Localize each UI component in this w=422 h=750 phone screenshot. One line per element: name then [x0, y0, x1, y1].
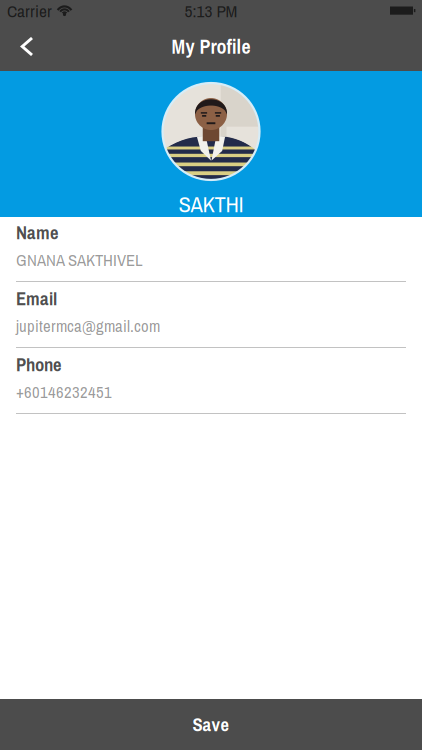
staticText: Email — [16, 286, 57, 311]
staticText: jupitermca@gmail.com — [16, 315, 160, 337]
staticText: SAKTHI — [178, 189, 243, 219]
staticText: +60146232451 — [16, 381, 112, 403]
staticText: Save — [192, 712, 229, 737]
staticText: Name — [16, 220, 59, 245]
staticText: Carrier — [7, 0, 52, 23]
staticText: 5:13 PM — [184, 0, 237, 23]
button[interactable]: Save — [0, 699, 422, 750]
staticText: My Profile — [171, 33, 250, 60]
staticText: GNANA SAKTHIVEL — [16, 249, 143, 271]
staticText: Phone — [16, 352, 62, 377]
button[interactable]: Back — [0, 22, 54, 71]
